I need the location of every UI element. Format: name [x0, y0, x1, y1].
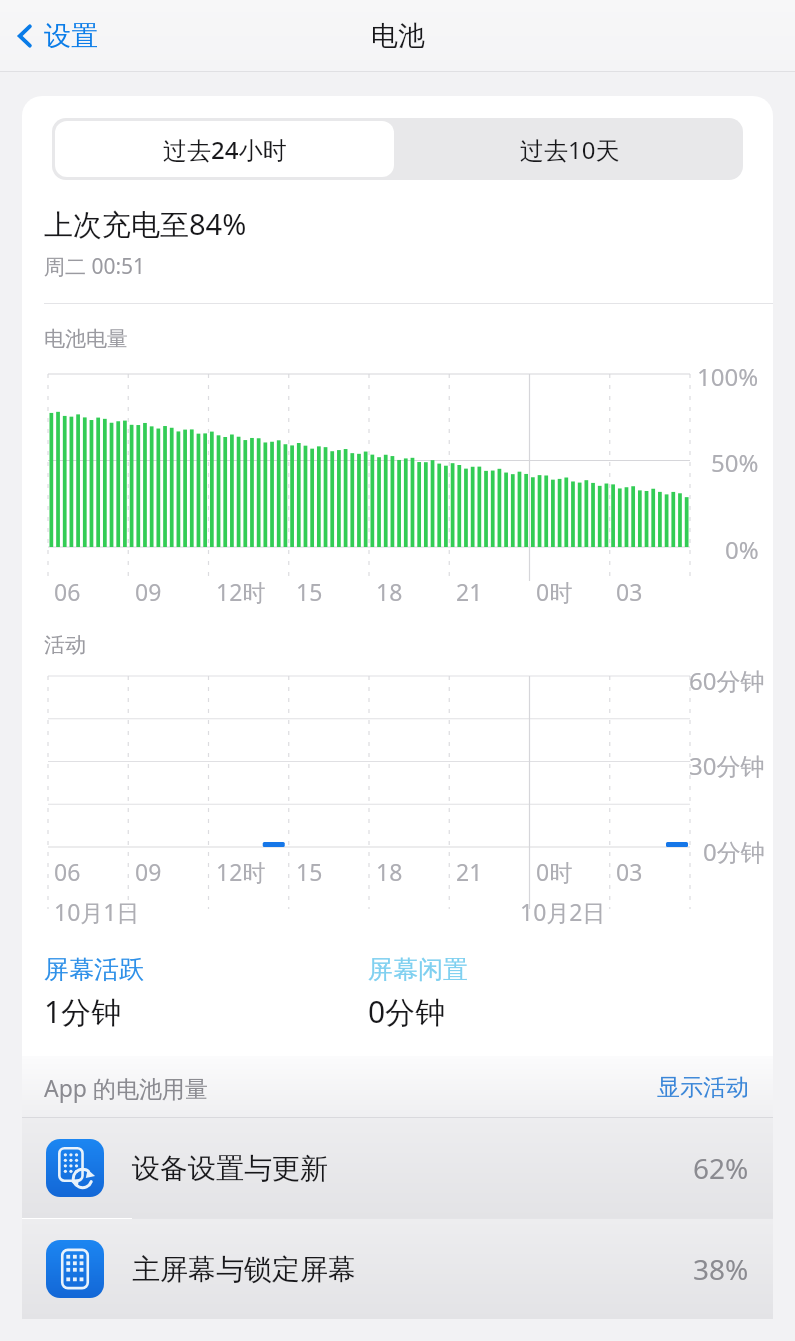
staticText: 设备设置与更新: [132, 1151, 328, 1186]
staticText: 12时: [216, 576, 266, 607]
staticText: 0%: [725, 533, 759, 566]
staticText: 30分钟: [689, 749, 765, 782]
staticText: 过去24小时: [163, 133, 287, 166]
button[interactable]: 设置: [8, 13, 104, 59]
staticText: 电池电量: [44, 326, 128, 352]
staticText: 活动: [44, 632, 86, 658]
staticText: 屏幕闲置: [368, 954, 468, 985]
staticText: 21: [456, 856, 483, 887]
staticText: 电池: [371, 19, 425, 53]
staticText: 0分钟: [703, 835, 765, 868]
button[interactable]: 显示活动: [655, 1069, 751, 1106]
staticText: 03: [616, 576, 643, 607]
staticText: 03: [616, 856, 643, 887]
staticText: App 的电池用量: [44, 1072, 208, 1103]
staticText: 60分钟: [689, 664, 765, 697]
staticText: 15: [296, 856, 323, 887]
staticText: 12时: [216, 856, 266, 887]
staticText: 0时: [536, 856, 573, 887]
staticText: 15: [296, 576, 323, 607]
staticText: 周二 00:51: [44, 252, 146, 281]
button[interactable]: 过去10天: [397, 118, 743, 180]
staticText: 50%: [711, 446, 759, 479]
button[interactable]: 过去24小时: [55, 121, 394, 177]
staticText: 屏幕活跃: [44, 954, 144, 985]
staticText: 过去10天: [520, 133, 620, 166]
staticText: 0时: [536, 576, 573, 607]
staticText: 38%: [693, 1250, 749, 1288]
staticText: 06: [54, 856, 81, 887]
staticText: 09: [135, 576, 162, 607]
staticText: 21: [456, 576, 483, 607]
staticText: 18: [376, 576, 403, 607]
staticText: 设置: [44, 19, 98, 53]
staticText: 09: [135, 856, 162, 887]
staticText: 上次充电至84%: [44, 204, 247, 244]
button[interactable]: 主屏幕与锁定屏幕: [22, 1219, 773, 1319]
staticText: 1分钟: [44, 991, 122, 1032]
staticText: 62%: [693, 1149, 749, 1187]
staticText: 主屏幕与锁定屏幕: [132, 1252, 356, 1287]
staticText: 显示活动: [657, 1073, 749, 1102]
staticText: 18: [376, 856, 403, 887]
button[interactable]: 设备设置与更新: [22, 1118, 773, 1218]
staticText: 10月1日: [54, 896, 140, 927]
staticText: 10月2日: [520, 896, 606, 927]
staticText: 100%: [697, 360, 759, 393]
staticText: 06: [54, 576, 81, 607]
staticText: 0分钟: [368, 991, 446, 1032]
